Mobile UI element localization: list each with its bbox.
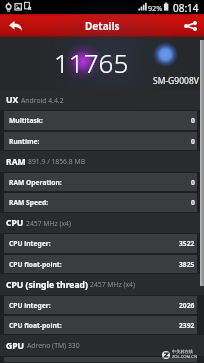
button[interactable]: RAM Operation: xyxy=(4,173,197,191)
staticText: Android 4.4.2 xyxy=(21,96,64,105)
staticText: 2457 MHz (x4) xyxy=(90,280,136,289)
button[interactable]: Runtime: xyxy=(4,132,197,150)
button[interactable]: Share xyxy=(174,14,204,37)
staticText: 08:14 xyxy=(173,1,199,15)
staticText: CPU float-point: xyxy=(9,260,62,269)
staticText: 0 xyxy=(191,198,195,207)
staticText: 2026 xyxy=(179,301,195,310)
staticText: 3825 xyxy=(179,260,195,269)
button[interactable]: Back xyxy=(0,14,32,37)
staticText: CPU integer: xyxy=(9,301,51,310)
staticText: 2392 xyxy=(179,321,195,330)
staticText: UX xyxy=(6,94,19,106)
staticText: Details xyxy=(85,19,120,33)
button[interactable]: CPU integer: xyxy=(4,234,197,253)
button[interactable] xyxy=(4,357,197,362)
staticText: SM-G9008V xyxy=(153,75,199,87)
staticText: 92% xyxy=(148,3,163,13)
staticText: 0 xyxy=(191,137,195,146)
button[interactable]: CPU integer: xyxy=(4,296,197,314)
staticText: CPU xyxy=(6,217,24,229)
staticText: RAM Operation: xyxy=(9,178,62,187)
staticText: 2457 MHz (x4) xyxy=(26,219,72,228)
staticText: 3522 xyxy=(179,239,195,248)
staticText: CPU (single thread) xyxy=(6,279,88,291)
button[interactable]: CPU float-point: xyxy=(4,316,197,334)
staticText: RAM xyxy=(6,156,26,168)
staticText: 11765 xyxy=(54,45,129,80)
staticText: 0 xyxy=(191,178,195,187)
staticText: CPU integer: xyxy=(9,239,51,248)
staticText: CPU float-point: xyxy=(9,321,62,330)
staticText: 中关村在线 xyxy=(172,349,193,354)
button[interactable]: Multitask: xyxy=(4,111,197,130)
button[interactable]: CPU float-point: xyxy=(4,255,197,273)
staticText: RAM Speed: xyxy=(9,198,49,207)
staticText: Adreno (TM) 330 xyxy=(27,341,80,350)
staticText: GPU xyxy=(6,340,25,352)
staticText: ZOL.COM.CN xyxy=(172,354,198,360)
staticText: 891.9 / 1856.8 MB xyxy=(28,157,86,166)
button[interactable]: RAM Speed: xyxy=(4,193,197,212)
staticText: Multitask: xyxy=(9,116,43,125)
staticText: Runtime: xyxy=(9,137,40,146)
staticText: 0 xyxy=(191,116,195,125)
